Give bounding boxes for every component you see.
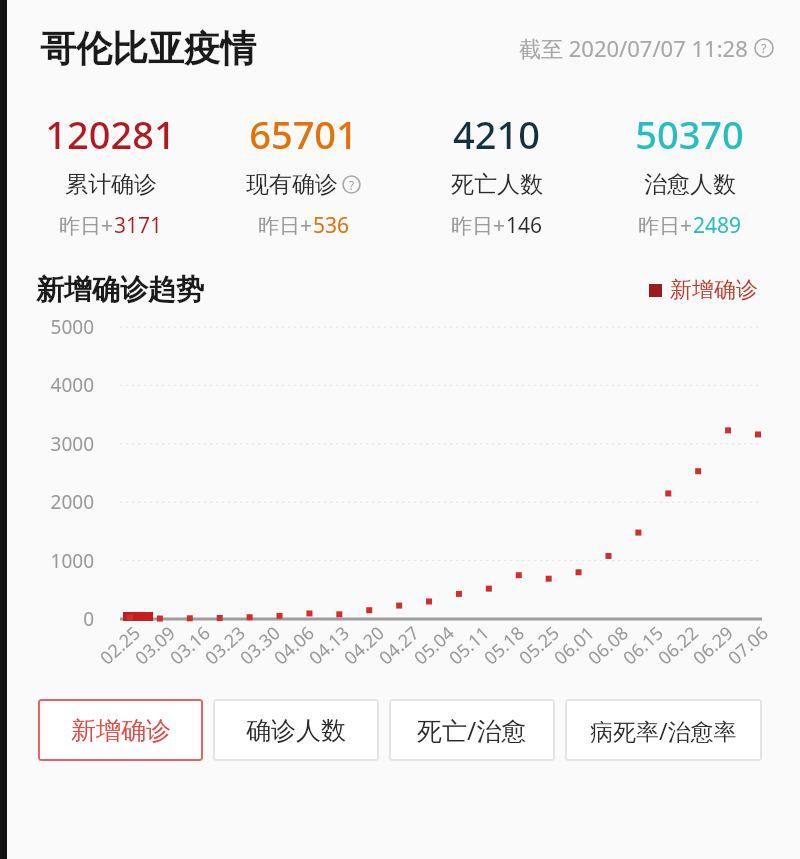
button[interactable]: 4210	[400, 106, 593, 242]
staticText: 死亡/治愈	[417, 713, 527, 747]
staticText: 现有确诊	[246, 170, 338, 199]
button[interactable]: 确诊人数	[213, 699, 379, 761]
staticText: 截至 2020/07/07 11:28	[519, 33, 748, 63]
staticText: 03.23	[193, 615, 257, 676]
staticText: 06.08	[576, 615, 640, 676]
button[interactable]: 新增确诊	[649, 276, 758, 304]
staticText: 05.11	[437, 615, 501, 676]
staticText: 死亡人数	[451, 170, 543, 199]
staticText: 06.29	[681, 615, 745, 676]
button[interactable]: 现有确诊说明	[342, 175, 361, 194]
staticText: 04.27	[367, 615, 431, 676]
staticText: 06.22	[646, 615, 710, 676]
staticText: 0	[0, 606, 94, 632]
staticText: 03.09	[123, 615, 187, 676]
staticText: 03.16	[158, 615, 222, 676]
staticText: 昨日+	[59, 211, 114, 240]
staticText: 65701	[249, 108, 358, 160]
staticText: 05.18	[472, 615, 536, 676]
button[interactable]: 死亡/治愈	[389, 699, 555, 761]
staticText: 哥伦比亚疫情	[40, 26, 256, 71]
staticText: 新增确诊趋势	[36, 272, 204, 307]
staticText: 2489	[693, 211, 742, 240]
staticText: 病死率/治愈率	[590, 715, 737, 746]
staticText: 07.06	[716, 615, 780, 676]
staticText: 05.25	[507, 615, 571, 676]
staticText: 治愈人数	[644, 170, 736, 199]
staticText: 06.01	[542, 615, 606, 676]
staticText: 146	[506, 211, 543, 240]
button[interactable]: 新增确诊	[38, 699, 203, 761]
staticText: ?	[349, 177, 355, 193]
staticText: 4000	[0, 372, 94, 398]
button[interactable]: 关于数据更新时间	[754, 38, 774, 58]
staticText: 昨日+	[258, 211, 313, 240]
staticText: 05.04	[402, 615, 466, 676]
staticText: 04.20	[332, 615, 396, 676]
button[interactable]: 50370	[593, 106, 786, 242]
staticText: 新增确诊	[670, 276, 758, 304]
staticText: 06.15	[611, 615, 675, 676]
staticText: 04.06	[262, 615, 326, 676]
staticText: 02.25	[88, 615, 152, 676]
staticText: 昨日+	[451, 211, 506, 240]
button[interactable]: 65701	[207, 106, 400, 242]
staticText: ?	[761, 40, 767, 57]
staticText: 04.13	[297, 615, 361, 676]
staticText: 新增确诊	[71, 715, 171, 746]
staticText: 5000	[0, 314, 94, 340]
staticText: 120281	[45, 108, 176, 160]
staticText: 1000	[0, 548, 94, 574]
staticText: 50370	[635, 108, 744, 160]
staticText: 3171	[114, 211, 163, 240]
staticText: 3000	[0, 431, 94, 457]
staticText: 2000	[0, 489, 94, 515]
staticText: 03.30	[228, 615, 292, 676]
staticText: 536	[313, 211, 350, 240]
button[interactable]: 120281	[14, 106, 207, 242]
staticText: 昨日+	[638, 211, 693, 240]
staticText: 4210	[453, 108, 540, 160]
staticText: 累计确诊	[65, 170, 157, 199]
staticText: 确诊人数	[246, 715, 346, 746]
button[interactable]: 病死率/治愈率	[565, 699, 762, 761]
